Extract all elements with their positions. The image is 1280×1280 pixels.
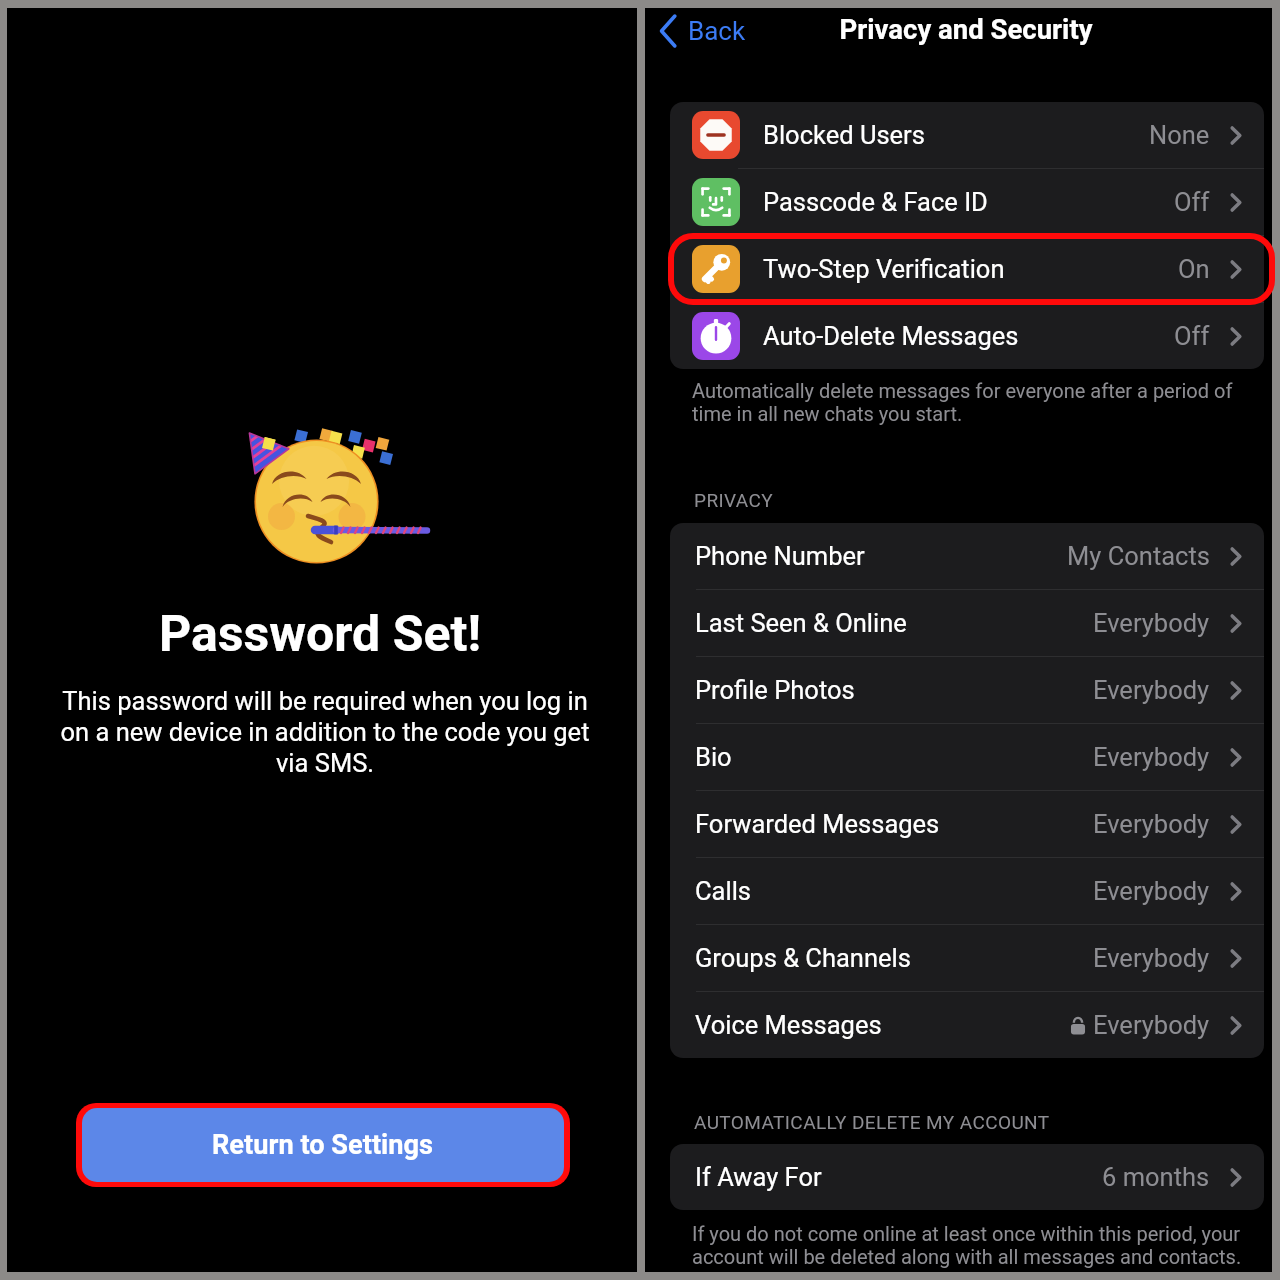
staticText: Last Seen & Online xyxy=(695,608,907,638)
staticText: Everybody xyxy=(1093,608,1210,638)
staticText: Return to Settings xyxy=(212,1129,434,1161)
staticText: Everybody xyxy=(1093,1010,1210,1040)
staticText: 6 months xyxy=(1102,1162,1210,1192)
staticText: Automatically delete messages for everyo… xyxy=(692,379,1248,425)
button[interactable]: Return to Settings xyxy=(82,1108,564,1182)
staticText: Everybody xyxy=(1093,876,1210,906)
staticText: Blocked Users xyxy=(763,120,925,150)
staticText: Passcode & Face ID xyxy=(763,187,988,217)
button[interactable]: Two-Step Verification xyxy=(670,236,1264,302)
staticText: On xyxy=(1178,254,1210,284)
staticText: Everybody xyxy=(1093,675,1210,705)
staticText: Groups & Channels xyxy=(695,943,911,973)
staticText: Everybody xyxy=(1093,809,1210,839)
staticText: None xyxy=(1149,120,1210,150)
staticText: Off xyxy=(1174,187,1210,217)
button[interactable]: Voice Messages xyxy=(670,992,1264,1058)
staticText: PRIVACY xyxy=(694,489,774,511)
button[interactable]: Phone Number xyxy=(670,523,1264,589)
staticText: Privacy and Security xyxy=(660,13,1272,45)
button[interactable]: Profile Photos xyxy=(670,657,1264,723)
staticText: Forwarded Messages xyxy=(695,809,940,839)
button[interactable]: Calls xyxy=(670,858,1264,924)
staticText: Off xyxy=(1174,321,1210,351)
staticText: Everybody xyxy=(1093,943,1210,973)
staticText: If Away For xyxy=(695,1162,822,1192)
staticText: Calls xyxy=(695,876,752,906)
staticText: Phone Number xyxy=(695,541,865,571)
button[interactable]: If Away For xyxy=(670,1144,1264,1210)
button[interactable]: Back xyxy=(655,8,750,54)
staticText: Two-Step Verification xyxy=(763,254,1005,284)
staticText: Password Set! xyxy=(5,605,635,664)
staticText: Bio xyxy=(695,742,732,772)
staticText: Voice Messages xyxy=(695,1010,882,1040)
button[interactable]: Bio xyxy=(670,724,1264,790)
staticText: Everybody xyxy=(1093,742,1210,772)
staticText: My Contacts xyxy=(1067,541,1210,571)
button[interactable]: Forwarded Messages xyxy=(670,791,1264,857)
button[interactable]: Last Seen & Online xyxy=(670,590,1264,656)
staticText: This password will be required when you … xyxy=(52,686,598,778)
staticText: If you do not come online at least once … xyxy=(692,1222,1248,1268)
button[interactable]: Groups & Channels xyxy=(670,925,1264,991)
staticText: Profile Photos xyxy=(695,675,855,705)
staticText: Auto-Delete Messages xyxy=(763,321,1019,351)
staticText: Back xyxy=(688,16,746,46)
staticText: AUTOMATICALLY DELETE MY ACCOUNT xyxy=(694,1111,1050,1133)
button[interactable]: Passcode & Face ID xyxy=(670,169,1264,235)
button[interactable]: Blocked Users xyxy=(670,102,1264,168)
button[interactable]: Auto-Delete Messages xyxy=(670,303,1264,369)
